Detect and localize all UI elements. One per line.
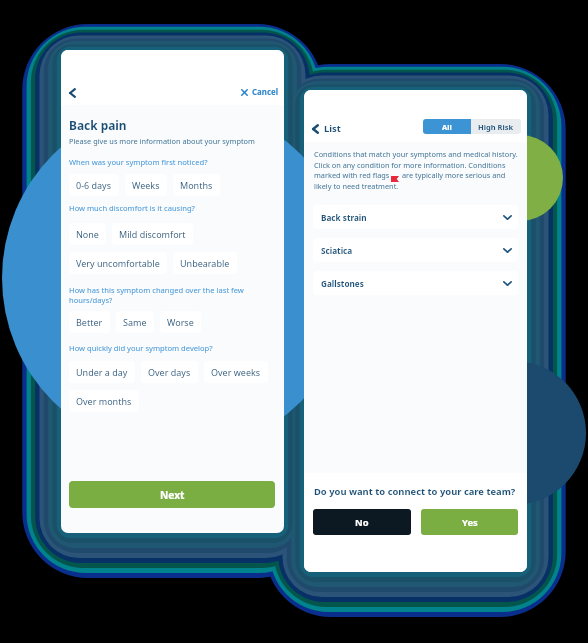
button[interactable]: Over months [69, 390, 139, 412]
button[interactable]: High Risk [471, 119, 521, 134]
staticText: How quickly did your symptom develop? [69, 343, 269, 353]
button[interactable]: Sciatica [313, 238, 518, 262]
staticText: Under a day [76, 366, 128, 378]
staticText: Sciatica [321, 245, 353, 256]
staticText: Yes [462, 516, 478, 529]
button[interactable]: Better [69, 311, 110, 333]
staticText: Over months [76, 395, 132, 407]
staticText: Very uncomfortable [76, 257, 160, 269]
button[interactable]: All [423, 119, 471, 134]
staticText: List [324, 122, 341, 135]
button[interactable]: List [310, 120, 343, 137]
staticText: Months [180, 179, 213, 191]
staticText: Mild discomfort [119, 228, 186, 240]
staticText: Back pain [69, 117, 127, 133]
button[interactable]: 0-6 days [69, 174, 119, 196]
staticText: Better [76, 316, 103, 328]
staticText: Weeks [132, 179, 160, 191]
button[interactable]: Mild discomfort [112, 223, 193, 245]
staticText: When was your symptom first noticed? [69, 157, 269, 167]
button[interactable]: Under a day [69, 361, 135, 383]
staticText: Worse [167, 316, 194, 328]
staticText: Do you want to connect to your care team… [314, 485, 516, 498]
button[interactable]: Yes [421, 509, 518, 535]
button[interactable]: Over days [141, 361, 198, 383]
button[interactable]: No [313, 509, 411, 535]
staticText: Click on any condition for more informat… [314, 160, 506, 170]
staticText: Conditions that match your symptoms and … [314, 149, 518, 159]
staticText: likely to need treatment. [314, 181, 399, 191]
staticText: Over weeks [211, 366, 261, 378]
button[interactable]: Weeks [125, 174, 167, 196]
button[interactable]: None [69, 223, 106, 245]
staticText: Same [123, 316, 147, 328]
staticText: are typically more serious and [402, 170, 506, 180]
button[interactable]: Months [173, 174, 220, 196]
staticText: All [442, 122, 452, 132]
button[interactable]: Worse [160, 311, 201, 333]
staticText: Unbearable [180, 257, 230, 269]
button[interactable]: Gallstones [313, 271, 518, 295]
button[interactable]: Back [69, 88, 76, 98]
staticText: None [76, 228, 99, 240]
staticText: Back strain [321, 212, 367, 223]
staticText: How has this symptom changed over the la… [69, 285, 266, 306]
button[interactable]: Over weeks [204, 361, 268, 383]
staticText: Cancel [252, 87, 279, 98]
staticText: Next [160, 488, 185, 502]
staticText: Over days [148, 366, 191, 378]
staticText: High Risk [478, 122, 514, 132]
staticText: marked with red flags [314, 170, 390, 180]
button[interactable]: Back strain [313, 205, 518, 229]
staticText: How much discomfort is it causing? [69, 203, 269, 213]
staticText: No [355, 516, 369, 529]
staticText: 0-6 days [76, 179, 112, 191]
button[interactable]: Unbearable [173, 252, 237, 274]
button[interactable]: Same [116, 311, 154, 333]
button[interactable]: Very uncomfortable [69, 252, 167, 274]
button[interactable]: Next [69, 481, 275, 508]
staticText: Please give us more information about yo… [69, 136, 255, 146]
button[interactable]: Cancel [239, 85, 281, 100]
staticText: Gallstones [321, 278, 364, 289]
